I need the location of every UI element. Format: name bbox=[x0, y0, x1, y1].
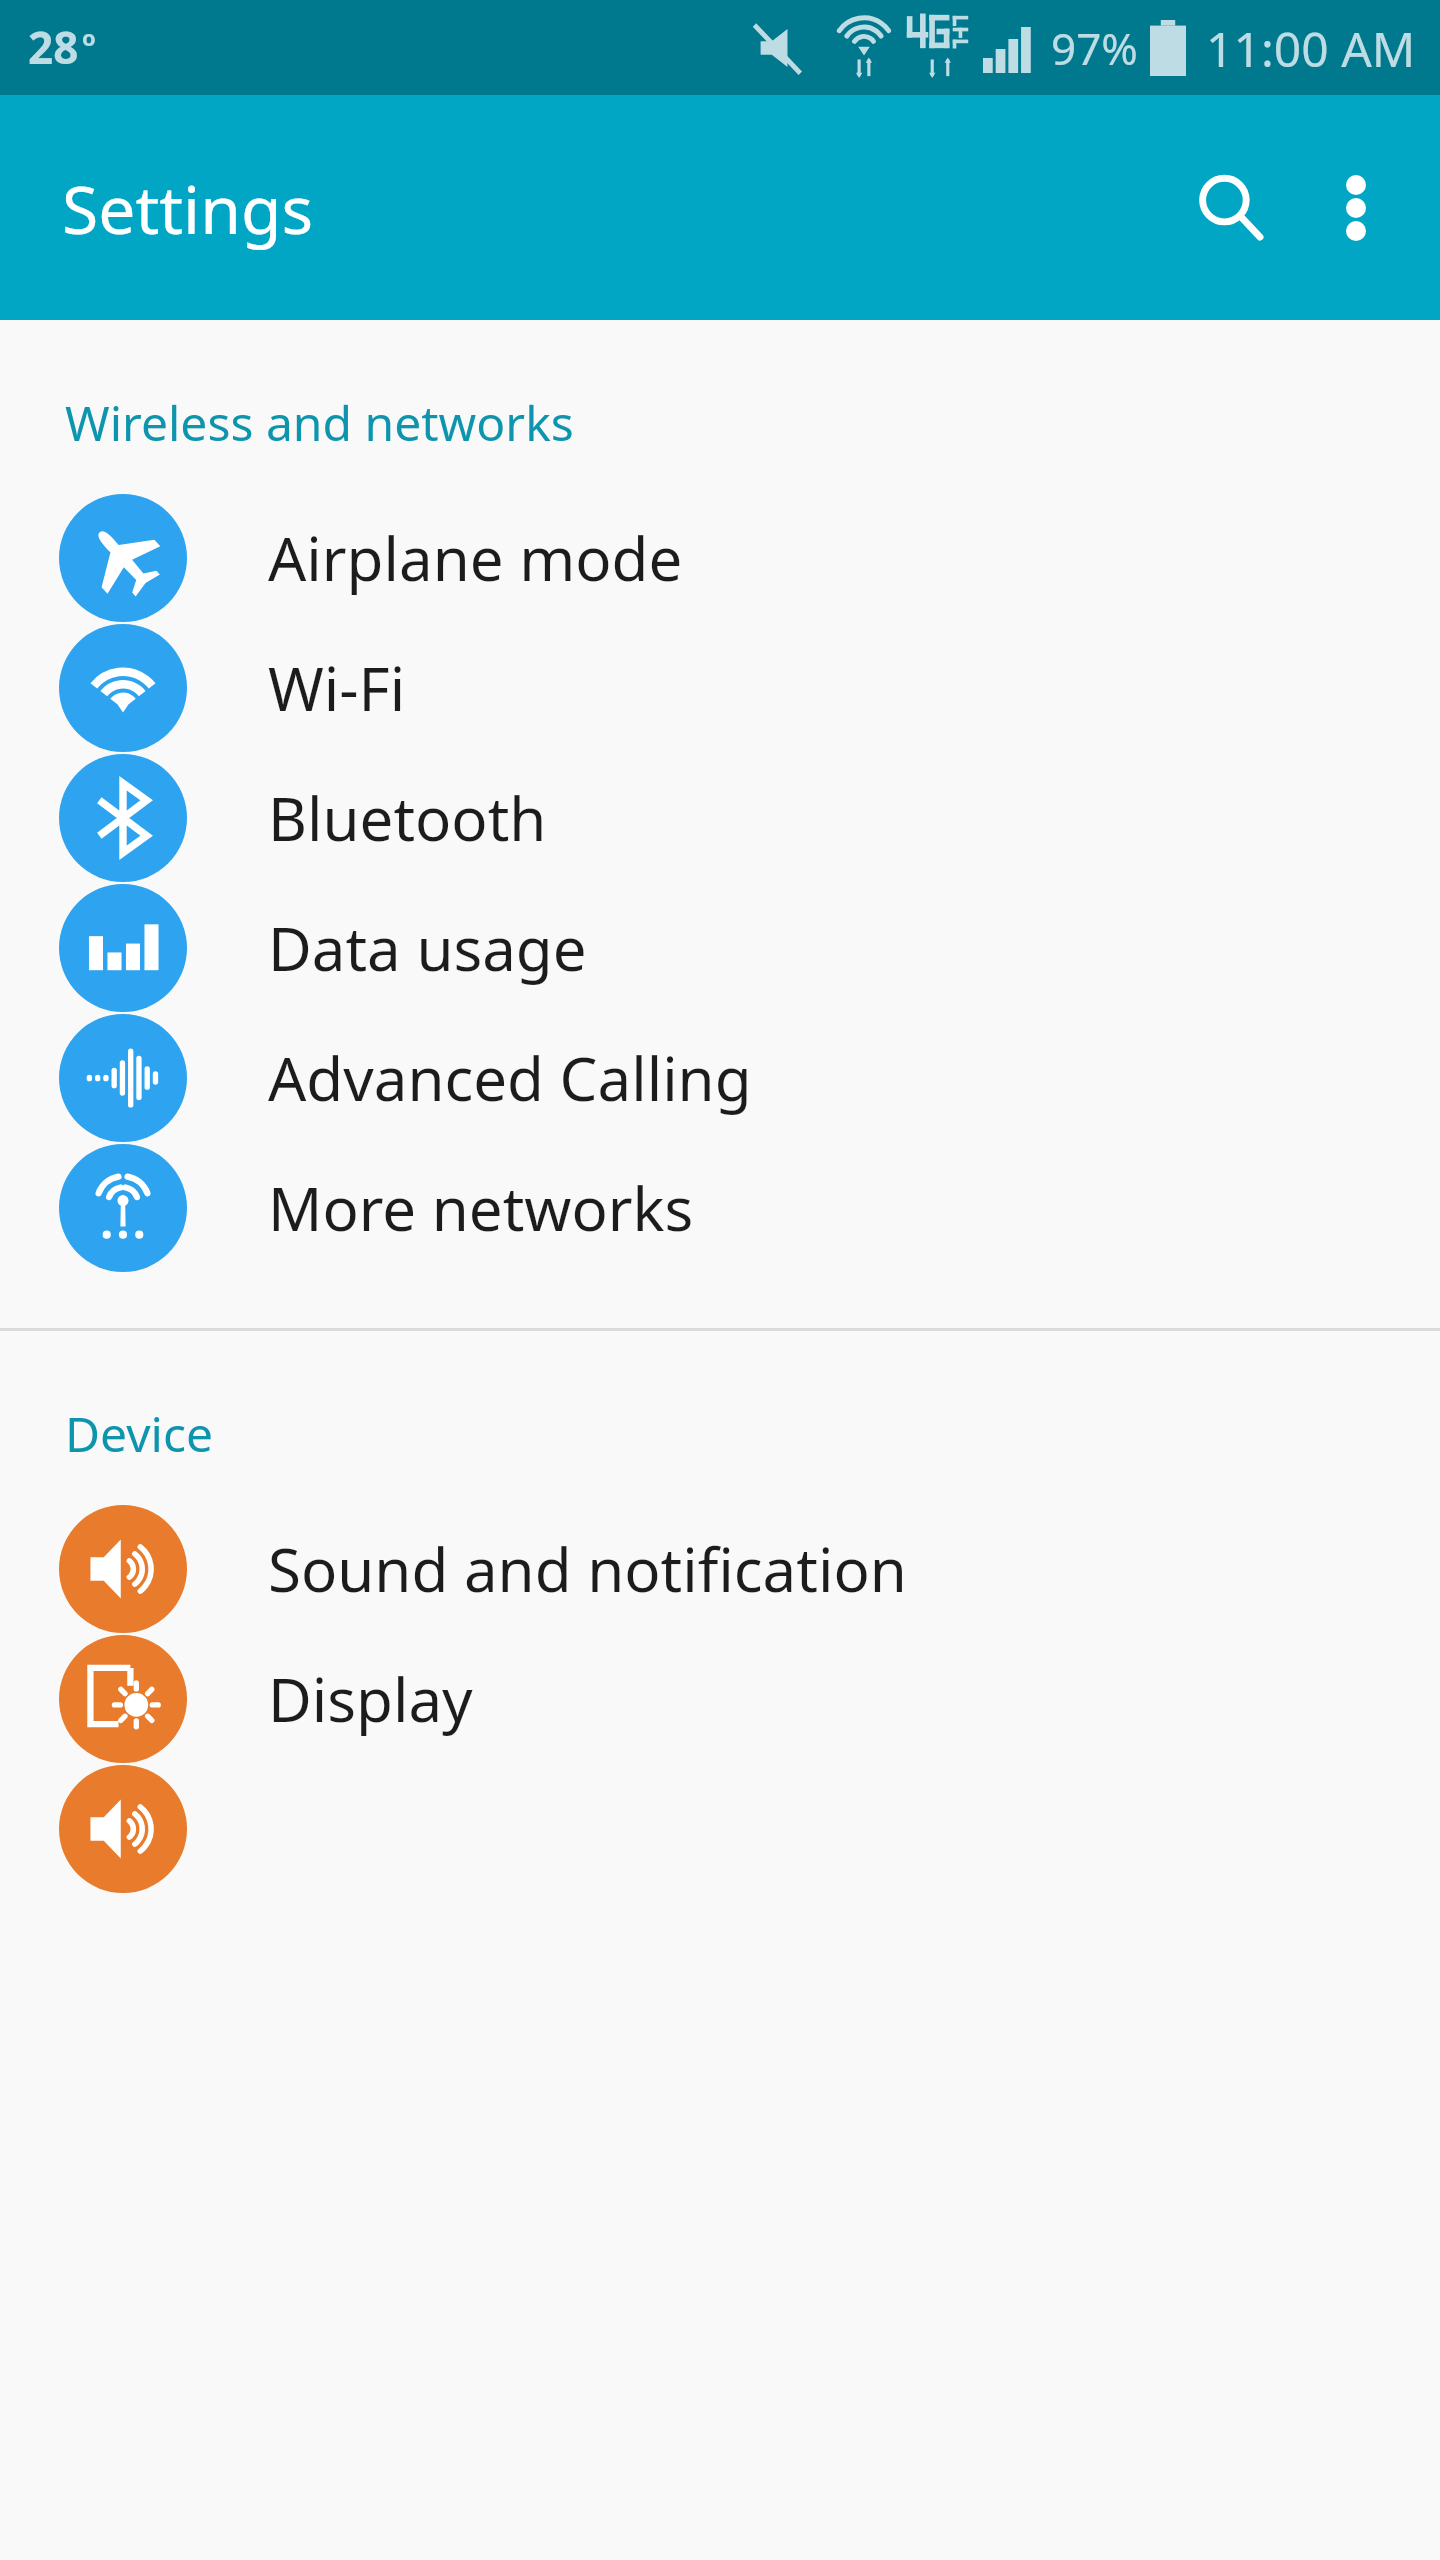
button[interactable]: More options bbox=[1296, 148, 1416, 268]
staticText: o bbox=[82, 22, 96, 52]
staticText: Wireless and networks bbox=[65, 390, 574, 455]
button[interactable]: More networks bbox=[0, 1143, 1440, 1273]
staticText: Advanced Calling bbox=[268, 1037, 752, 1119]
button[interactable]: Sound and notification bbox=[0, 1504, 1440, 1634]
staticText: 28 bbox=[28, 17, 79, 77]
staticText: Data usage bbox=[268, 907, 587, 989]
button[interactable]: Bluetooth bbox=[0, 753, 1440, 883]
button[interactable]: Advanced Calling bbox=[0, 1013, 1440, 1143]
staticText: Wi-Fi bbox=[268, 647, 406, 729]
button[interactable]: Search bbox=[1166, 143, 1296, 273]
button[interactable]: Display bbox=[0, 1634, 1440, 1764]
staticText: Airplane mode bbox=[268, 517, 683, 599]
staticText: More networks bbox=[268, 1167, 694, 1249]
button[interactable]: Airplane mode bbox=[0, 493, 1440, 623]
staticText: Sound and notification bbox=[268, 1528, 907, 1610]
button[interactable]: Data usage bbox=[0, 883, 1440, 1013]
staticText: Display bbox=[268, 1658, 473, 1740]
staticText: Device bbox=[65, 1401, 214, 1466]
staticText: Bluetooth bbox=[268, 777, 547, 859]
button[interactable]: Wi-Fi bbox=[0, 623, 1440, 753]
button[interactable] bbox=[0, 1764, 1440, 1894]
staticText: 97% bbox=[1051, 18, 1138, 78]
staticText: Settings bbox=[62, 163, 314, 253]
staticText: 11:00 AM bbox=[1206, 16, 1416, 81]
